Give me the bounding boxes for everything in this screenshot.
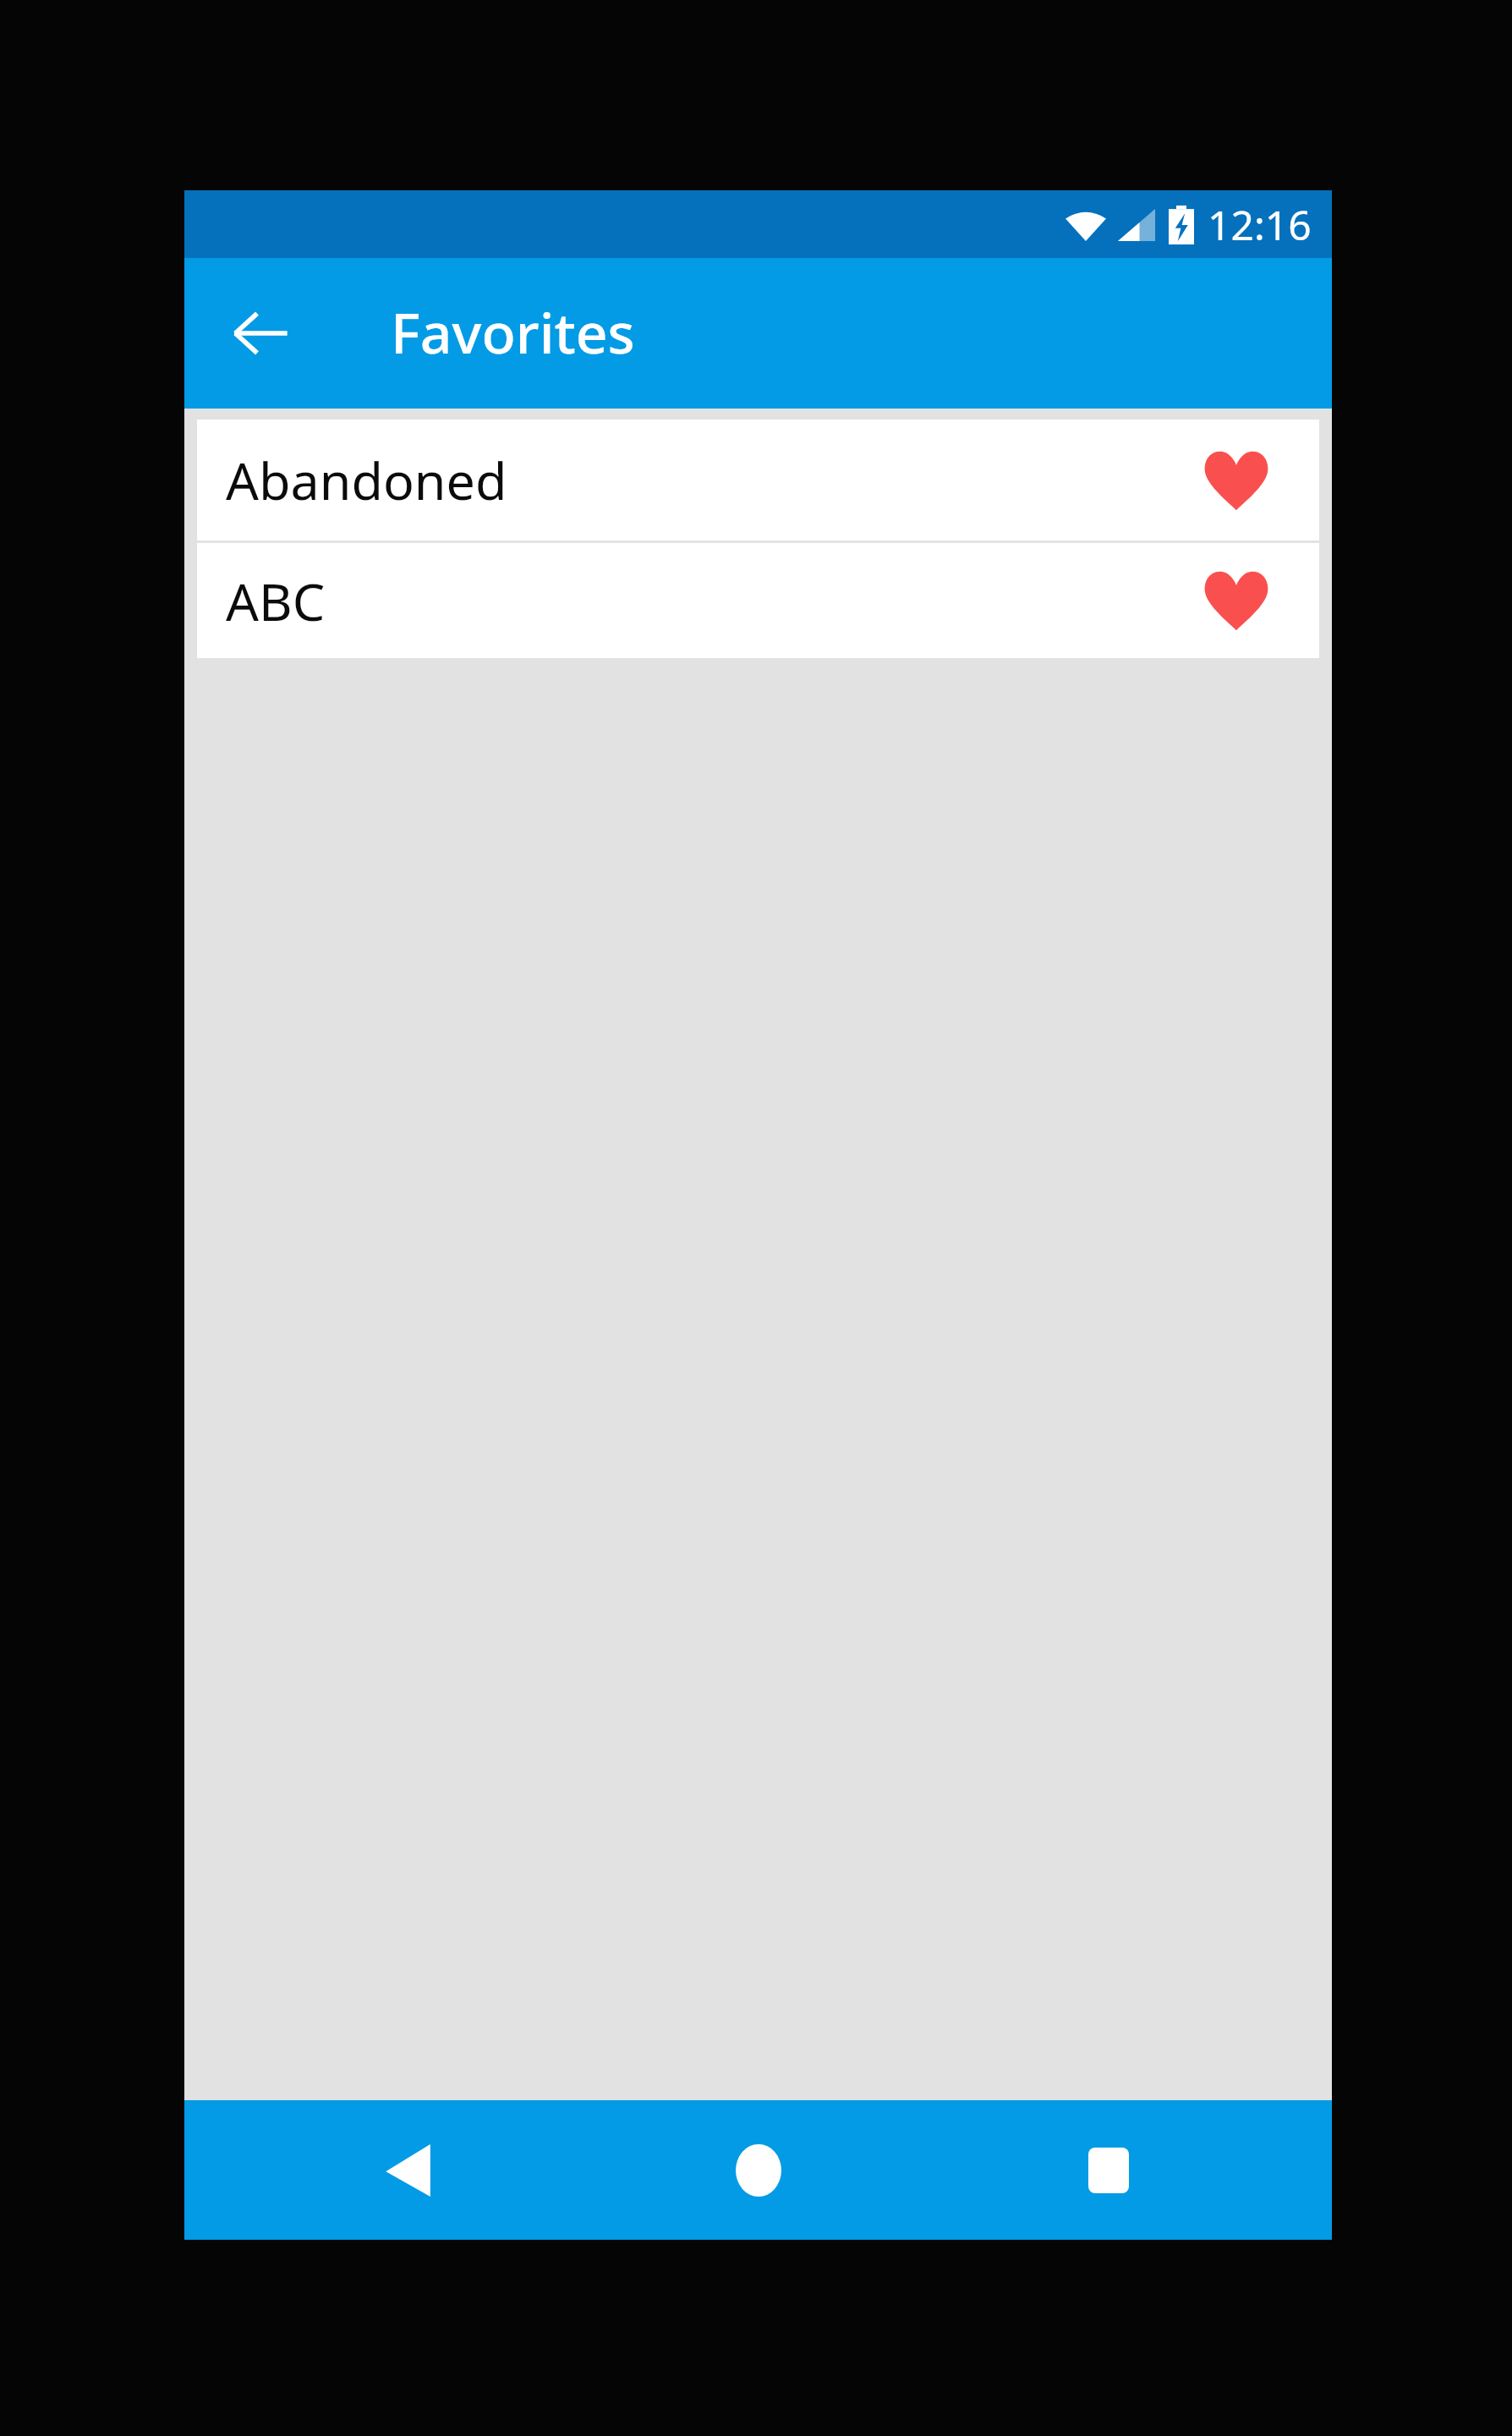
button[interactable]: Navigate up <box>210 283 311 384</box>
button[interactable]: Back <box>281 2100 534 2240</box>
button[interactable]: Remove from favorites <box>1196 560 1277 641</box>
button[interactable]: ABC <box>197 543 1319 658</box>
button[interactable]: Abandoned <box>197 420 1319 540</box>
staticText: 12:16 <box>1208 197 1312 252</box>
button[interactable]: Recent apps <box>982 2100 1235 2240</box>
staticText: Abandoned <box>226 445 1196 515</box>
button[interactable]: Home <box>632 2100 885 2240</box>
staticText: Favorites <box>391 294 635 370</box>
button[interactable]: Remove from favorites <box>1196 440 1277 521</box>
staticText: ABC <box>226 566 1196 636</box>
